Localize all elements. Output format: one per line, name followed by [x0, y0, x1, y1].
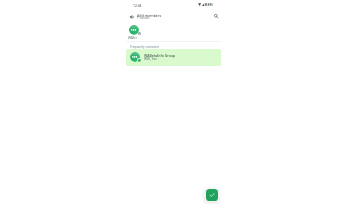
staticText: Frequently contacted [130, 45, 170, 49]
button[interactable] [126, 49, 221, 66]
button[interactable]: Search [210, 10, 221, 21]
staticText: Add members [137, 13, 177, 18]
button[interactable]: Remove member [138, 32, 141, 35]
staticText: WABetaInfo Group [144, 53, 188, 58]
staticText: 1 contact [137, 16, 167, 20]
staticText: WABeta… [128, 36, 137, 40]
button[interactable]: Back [126, 11, 137, 22]
button[interactable]: Done [206, 189, 218, 201]
staticText: 12:44 [133, 3, 145, 7]
staticText: WBI, You [144, 57, 174, 61]
